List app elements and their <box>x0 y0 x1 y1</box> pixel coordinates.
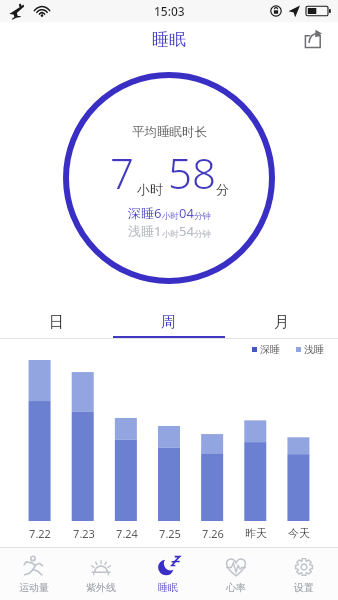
button[interactable]: 紫外线 <box>67 548 134 600</box>
staticText: 分钟 <box>194 211 211 222</box>
staticText: 深睡6 <box>128 204 162 222</box>
staticText: 7.23 <box>73 526 95 541</box>
staticText: 58 <box>168 144 216 201</box>
staticText: 分钟 <box>194 229 211 240</box>
staticText: 小时 <box>137 181 163 197</box>
staticText: 分 <box>216 181 229 197</box>
button[interactable]: 睡眠 <box>134 548 202 600</box>
staticText: 周 <box>161 313 176 332</box>
staticText: 小时 <box>162 211 179 222</box>
staticText: 日 <box>49 313 64 332</box>
staticText: 睡眠 <box>158 581 178 594</box>
staticText: 15:03 <box>154 3 185 19</box>
button[interactable]: 月 <box>225 306 338 338</box>
button[interactable]: Share <box>298 24 328 54</box>
staticText: 运动量 <box>19 581 49 594</box>
staticText: 54 <box>179 222 194 240</box>
button[interactable]: 运动量 <box>0 548 67 600</box>
staticText: 7 <box>110 144 134 201</box>
staticText: 7.25 <box>159 526 181 541</box>
staticText: 7.26 <box>202 526 224 541</box>
staticText: 心率 <box>226 581 246 594</box>
staticText: 7.22 <box>29 526 51 541</box>
staticText: 小时 <box>162 229 179 240</box>
button[interactable]: 心率 <box>202 548 270 600</box>
staticText: 设置 <box>294 581 314 594</box>
staticText: 昨天 <box>245 526 267 540</box>
staticText: 平均睡眠时长 <box>132 124 207 140</box>
button[interactable]: 设置 <box>270 548 338 600</box>
staticText: 紫外线 <box>86 581 116 594</box>
staticText: 浅睡1 <box>128 222 162 240</box>
staticText: 04 <box>179 204 194 222</box>
button[interactable]: 周 <box>112 306 225 338</box>
staticText: 月 <box>274 313 289 332</box>
staticText: 浅睡 <box>304 343 324 356</box>
staticText: 7.24 <box>116 526 138 541</box>
staticText: 今天 <box>288 526 310 540</box>
button[interactable]: 日 <box>0 306 112 338</box>
staticText: 睡眠 <box>152 29 186 50</box>
staticText: 深睡 <box>260 343 280 356</box>
